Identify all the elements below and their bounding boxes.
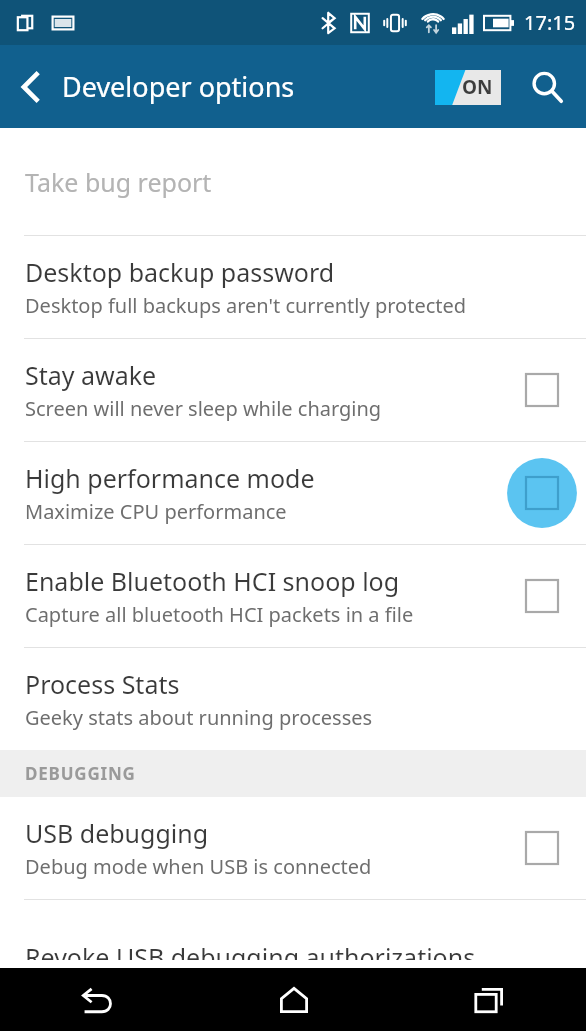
staticText: Revoke USB debugging authorizations bbox=[25, 940, 476, 960]
button[interactable]: Recent apps bbox=[391, 968, 586, 1031]
button[interactable]: Take bug report bbox=[0, 128, 586, 235]
button[interactable]: USB debugging bbox=[0, 797, 586, 899]
staticText: ON bbox=[462, 74, 493, 100]
button[interactable]: USB debugging bbox=[506, 812, 578, 884]
staticText: Enable Bluetooth HCI snoop log bbox=[25, 564, 400, 598]
button[interactable]: High performance mode bbox=[0, 442, 586, 544]
staticText: Debug mode when USB is connected bbox=[25, 853, 372, 880]
staticText: Desktop full backups aren't currently pr… bbox=[25, 292, 467, 319]
button[interactable]: Back bbox=[0, 968, 196, 1031]
button[interactable]: Search bbox=[514, 45, 580, 128]
staticText: Process Stats bbox=[25, 667, 180, 701]
button[interactable]: Developer options on bbox=[430, 61, 506, 113]
staticText: 17:15 bbox=[524, 9, 576, 36]
button[interactable]: Revoke USB debugging authorizations bbox=[0, 900, 586, 960]
button[interactable]: Stay awake bbox=[506, 354, 578, 426]
button[interactable]: Home bbox=[196, 968, 391, 1031]
staticText: Screen will never sleep while charging bbox=[25, 395, 382, 422]
button[interactable]: Stay awake bbox=[0, 339, 586, 441]
button[interactable]: Back bbox=[0, 45, 62, 128]
staticText: Desktop backup password bbox=[25, 255, 335, 289]
staticText: High performance mode bbox=[25, 461, 315, 495]
staticText: Developer options bbox=[62, 68, 295, 105]
button[interactable]: Enable Bluetooth HCI snoop log bbox=[0, 545, 586, 647]
button[interactable]: High performance mode bbox=[506, 457, 578, 529]
staticText: Take bug report bbox=[25, 165, 212, 199]
staticText: Geeky stats about running processes bbox=[25, 704, 373, 731]
staticText: Maximize CPU performance bbox=[25, 498, 287, 525]
staticText: Capture all bluetooth HCI packets in a f… bbox=[25, 601, 414, 628]
staticText: DEBUGGING bbox=[25, 762, 136, 785]
staticText: USB debugging bbox=[25, 816, 209, 850]
staticText: Stay awake bbox=[25, 358, 157, 392]
button[interactable]: Enable Bluetooth HCI snoop log bbox=[506, 560, 578, 632]
button[interactable]: Process Stats bbox=[0, 648, 586, 750]
button[interactable]: Desktop backup password bbox=[0, 236, 586, 338]
